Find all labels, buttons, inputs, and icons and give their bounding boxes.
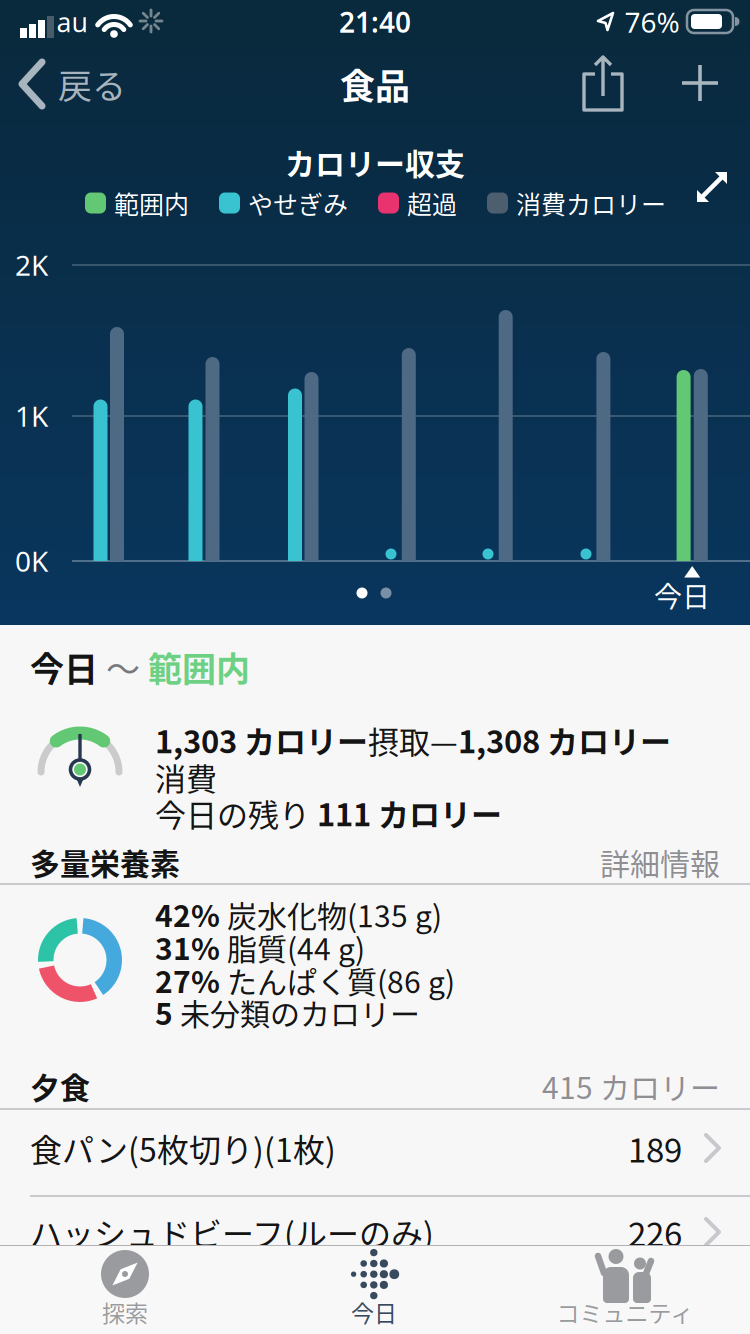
button[interactable]: 探索 (5, 1245, 245, 1334)
button[interactable]: 今日 (255, 1245, 495, 1334)
staticText: 多量栄養素 (30, 840, 180, 884)
staticText: 食品 (340, 59, 410, 109)
button[interactable]: 詳細情報 (600, 840, 720, 884)
staticText: 42% 炭水化物(135 g) (155, 893, 442, 935)
staticText: 範囲内 (114, 185, 189, 221)
staticText: 今日 (654, 575, 710, 615)
staticText: 226 (628, 1208, 682, 1256)
staticText: 21:40 (339, 3, 411, 41)
staticText: 今日の残り 111 カロリー (155, 791, 502, 835)
staticText: コミュニティ (556, 1295, 693, 1329)
staticText: 詳細情報 (600, 840, 720, 884)
staticText: 今日 (30, 642, 98, 692)
button[interactable]: コミュニティ (505, 1245, 745, 1334)
staticText: 5 未分類のカロリー (155, 991, 420, 1033)
staticText: 消費 (155, 755, 217, 799)
staticText: やせぎみ (248, 185, 348, 221)
staticText: ハッシュドビーフ(ルーのみ) (30, 1209, 434, 1255)
staticText: 1K (15, 397, 48, 435)
staticText: 超過 (407, 185, 457, 221)
staticText: 27% たんぱく質(86 g) (155, 959, 455, 1001)
button[interactable]: ハッシュドビーフ(ルーのみ) (0, 1188, 750, 1276)
staticText: 0K (15, 542, 48, 580)
staticText: 戻る (58, 59, 126, 109)
staticText: 76% (624, 3, 679, 41)
staticText: 探索 (102, 1295, 148, 1329)
button[interactable]: Expand chart (690, 165, 734, 209)
staticText: 食パン(5枚切り)(1枚) (30, 1125, 336, 1171)
staticText: 消費カロリー (516, 185, 666, 221)
button[interactable]: 戻る (18, 54, 168, 114)
staticText: 189 (628, 1124, 682, 1172)
staticText: 〜 (98, 642, 148, 692)
staticText: 2K (15, 246, 48, 284)
staticText: 範囲内 (148, 642, 250, 692)
staticText: 今日 (351, 1295, 397, 1329)
button[interactable]: 食パン(5枚切り)(1枚) (0, 1104, 750, 1192)
button[interactable]: Add (668, 51, 732, 115)
staticText: au (56, 4, 87, 40)
staticText: カロリー収支 (285, 140, 465, 184)
staticText: 31% 脂質(44 g) (155, 926, 365, 968)
button[interactable]: Share (568, 49, 638, 119)
staticText: 夕食 (30, 1064, 90, 1108)
staticText: 1,303 カロリー摂取—1,308 カロリー (155, 718, 671, 762)
staticText: 415 カロリー (542, 1064, 720, 1108)
